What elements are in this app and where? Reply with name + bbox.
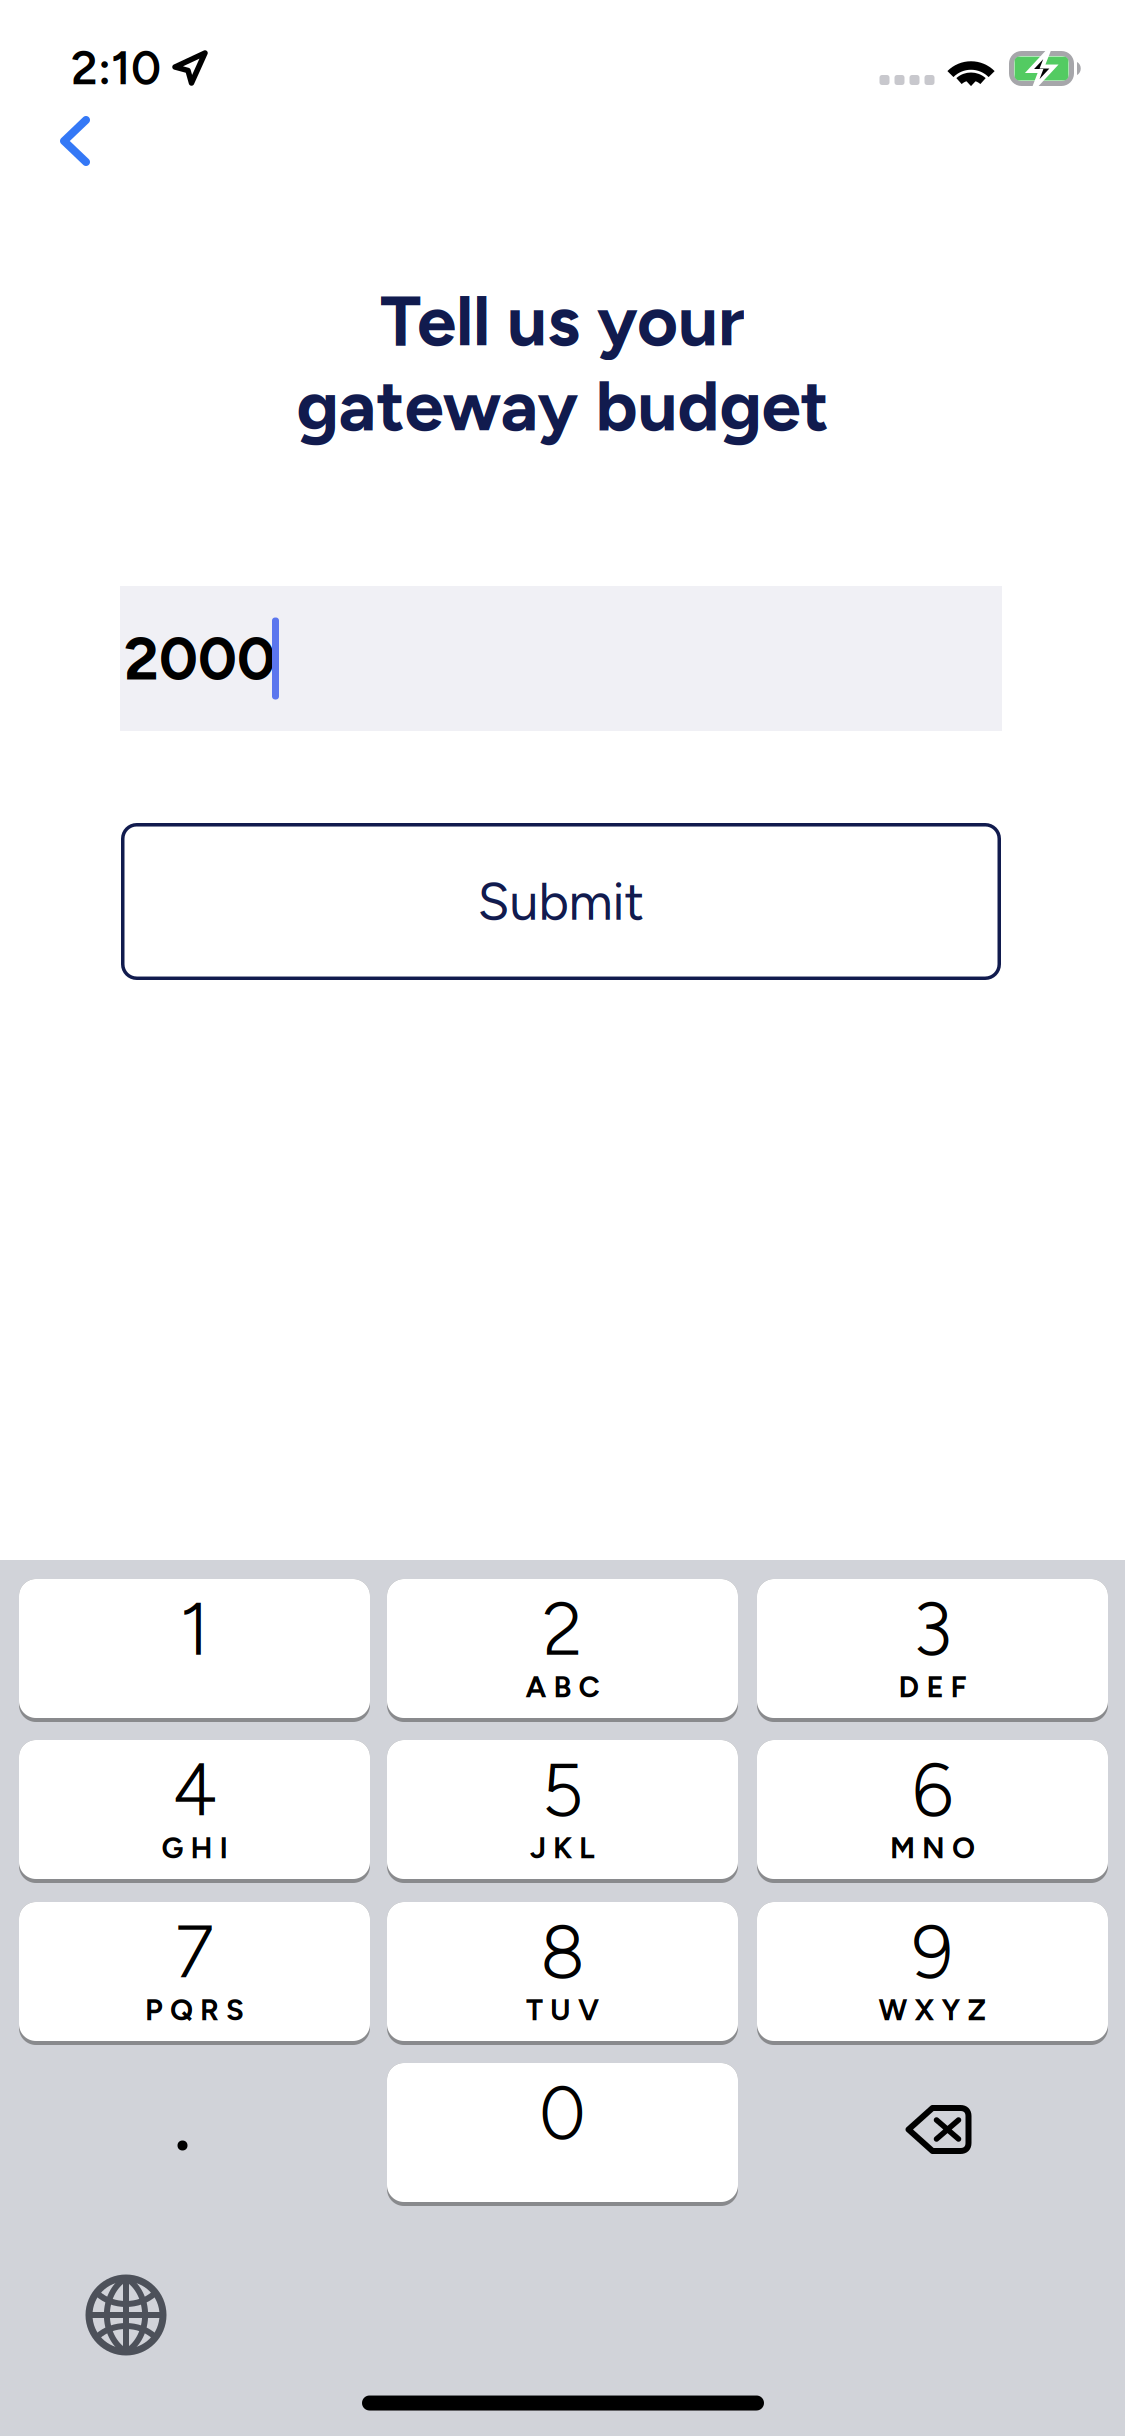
staticText: Tell us your [380, 278, 745, 363]
button[interactable]: 4 [19, 1740, 370, 1883]
staticText: 2:10 [71, 40, 161, 96]
button[interactable]: 5 [387, 1740, 738, 1883]
staticText: A B C [525, 1669, 599, 1705]
staticText: 9 [912, 1908, 953, 1996]
staticText: 4 [172, 1746, 217, 1834]
button[interactable]: 7 [19, 1902, 370, 2045]
button[interactable]: Back [20, 93, 130, 189]
staticText: P Q R S [145, 1992, 244, 2028]
button[interactable]: 9 [757, 1902, 1108, 2045]
staticText: 2 [542, 1585, 582, 1673]
button[interactable]: Next keyboard [51, 2250, 201, 2380]
staticText: 8 [540, 1908, 585, 1996]
staticText: M N O [890, 1830, 975, 1866]
staticText: G H I [161, 1830, 227, 1866]
button[interactable]: 2 [387, 1579, 738, 1722]
staticText: gateway budget [296, 363, 828, 448]
button[interactable]: Decimal point [19, 2065, 370, 2204]
staticText: Submit [477, 870, 644, 933]
button[interactable]: 8 [387, 1902, 738, 2045]
button[interactable]: 0 [387, 2063, 738, 2206]
staticText: W X Y Z [878, 1992, 986, 2028]
staticText: 6 [912, 1746, 953, 1834]
staticText: D E F [898, 1669, 966, 1705]
button[interactable]: 3 [757, 1579, 1108, 1722]
button[interactable]: Delete [757, 2065, 1108, 2204]
button[interactable]: Submit [121, 823, 1001, 980]
staticText: 3 [912, 1585, 952, 1673]
staticText: J K L [530, 1830, 595, 1866]
button[interactable]: 1 [19, 1579, 370, 1722]
staticText: 1 [179, 1585, 209, 1673]
staticText: 0 [539, 2069, 586, 2157]
staticText: 7 [175, 1908, 214, 1996]
staticText: 5 [541, 1746, 583, 1834]
staticText: T U V [526, 1992, 599, 2028]
staticText: 2000 [124, 622, 276, 694]
button[interactable]: 6 [757, 1740, 1108, 1883]
